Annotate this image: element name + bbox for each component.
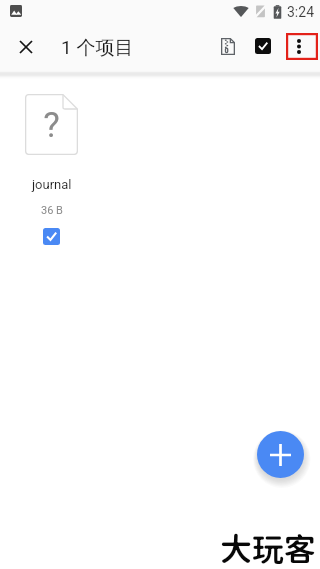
staticText: 36 B — [41, 204, 63, 217]
staticText: 大玩客 — [220, 530, 317, 568]
staticText: 3:24 — [287, 4, 314, 20]
staticText: ? — [43, 105, 60, 146]
button[interactable]: Compress — [209, 27, 247, 65]
staticText: 1 个项目 — [61, 36, 134, 60]
staticText: journal — [32, 177, 72, 192]
button[interactable]: Add — [257, 431, 304, 478]
button[interactable]: Selected — [43, 228, 60, 245]
button[interactable]: Close — [2, 24, 50, 69]
button[interactable]: More options — [280, 27, 318, 65]
button[interactable]: Select all — [244, 27, 282, 65]
